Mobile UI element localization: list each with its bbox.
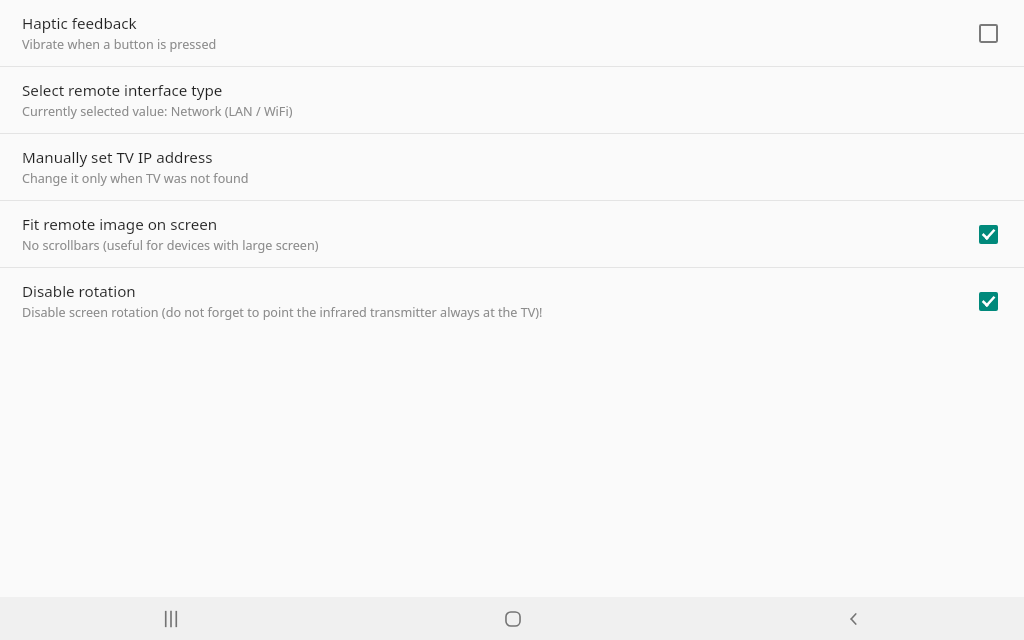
button[interactable]: Recent apps (0, 597, 342, 640)
staticText: No scrollbars (useful for devices with l… (22, 237, 319, 254)
button[interactable]: Disable rotation (970, 283, 1006, 319)
button[interactable]: Haptic feedback (0, 0, 1024, 66)
button[interactable]: Fit remote image on screen (0, 201, 1024, 267)
button[interactable]: Home (342, 597, 683, 640)
staticText: Disable screen rotation (do not forget t… (22, 304, 543, 321)
staticText: Manually set TV IP address (22, 147, 213, 168)
button[interactable]: Back (683, 597, 1024, 640)
button[interactable]: Haptic feedback (970, 15, 1006, 51)
button[interactable]: Select remote interface type (0, 67, 1024, 133)
button[interactable]: Disable rotation (0, 268, 1024, 334)
button[interactable]: Manually set TV IP address (0, 134, 1024, 200)
staticText: Fit remote image on screen (22, 214, 218, 235)
staticText: Vibrate when a button is pressed (22, 36, 217, 53)
staticText: Select remote interface type (22, 80, 223, 101)
button[interactable]: Fit remote image on screen (970, 216, 1006, 252)
staticText: Disable rotation (22, 281, 136, 302)
staticText: Change it only when TV was not found (22, 170, 249, 187)
staticText: Currently selected value: Network (LAN /… (22, 103, 293, 120)
staticText: Haptic feedback (22, 13, 137, 34)
